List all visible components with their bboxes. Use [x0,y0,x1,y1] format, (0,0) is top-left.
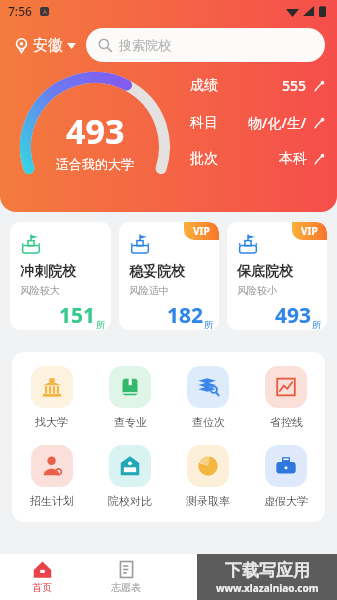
staticText: 测录取率 [186,494,230,508]
button[interactable]: 找大学 [12,366,91,429]
button[interactable]: VIP [119,222,219,330]
staticText: 虚假大学 [264,494,308,508]
button[interactable]: 查位次 [169,366,247,429]
staticText: 查专业 [114,415,147,429]
button[interactable]: 查专业 [91,366,169,429]
staticText: 找大学 [35,415,68,429]
button[interactable]: 批次 [190,150,325,168]
staticText: A [43,8,47,16]
staticText: 182 [167,301,204,330]
staticText: VIP [193,224,210,238]
staticText: 所 [204,319,213,330]
staticText: 志愿表 [111,581,141,594]
staticText: 批次 [190,150,218,168]
button[interactable]: 冲刺院校 [10,222,111,330]
staticText: 稳妥院校 [129,263,185,281]
staticText: 7:56 [8,3,32,19]
button[interactable]: 虚假大学 [247,445,325,508]
button[interactable]: 测录取率 [169,445,247,508]
button[interactable]: 搜索院校 [86,28,325,62]
staticText: 保底院校 [237,263,293,281]
staticText: 555 [282,76,307,95]
staticText: www.xlazalniao.com [216,581,319,595]
staticText: 查位次 [192,415,225,429]
staticText: 冲刺院校 [20,263,76,281]
button[interactable]: 招生计划 [12,445,91,508]
staticText: 招生计划 [30,494,74,508]
staticText: 所 [312,319,321,330]
staticText: 安徽 [33,36,63,55]
staticText: 成绩 [190,77,218,95]
button[interactable]: 院校对比 [91,445,169,508]
staticText: 风险较大 [20,284,60,297]
staticText: 适合我的大学 [56,156,134,172]
staticText: 科目 [190,114,218,132]
staticText: 院校对比 [108,494,152,508]
staticText: 省控线 [270,415,303,429]
staticText: 所 [96,319,105,330]
button[interactable]: 安徽 [12,32,78,59]
button[interactable]: 志愿表 [84,554,168,600]
staticText: 风险较小 [237,284,277,297]
button[interactable]: VIP [227,222,327,330]
button[interactable]: 科目 [190,113,325,132]
button[interactable]: 首页 [0,554,84,600]
staticText: 本科 [279,150,307,168]
staticText: 物/化/生/ [248,113,307,132]
staticText: 493 [275,301,312,330]
staticText: VIP [301,224,318,238]
button[interactable]: 省控线 [247,366,325,429]
staticText: 首页 [32,581,52,594]
staticText: 下载写应用 [225,560,310,581]
button[interactable]: 成绩 [190,76,325,95]
staticText: 风险适中 [129,284,169,297]
staticText: 151 [59,301,96,330]
staticText: 493 [66,108,125,154]
staticText: 搜索院校 [119,37,171,53]
